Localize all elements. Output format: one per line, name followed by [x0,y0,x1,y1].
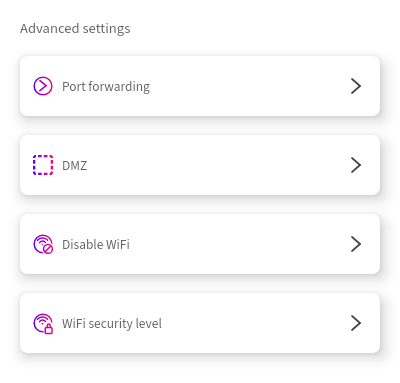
staticText: WiFi security level [62,314,162,333]
staticText: Advanced settings [20,18,131,39]
staticText: Disable WiFi [62,235,130,254]
staticText: Port forwarding [62,77,150,96]
button[interactable]: DMZ [20,135,380,195]
button[interactable]: Disable WiFi [20,214,380,274]
button[interactable]: WiFi security level [20,293,380,353]
button[interactable]: Port forwarding [20,56,380,116]
staticText: DMZ [62,156,88,175]
